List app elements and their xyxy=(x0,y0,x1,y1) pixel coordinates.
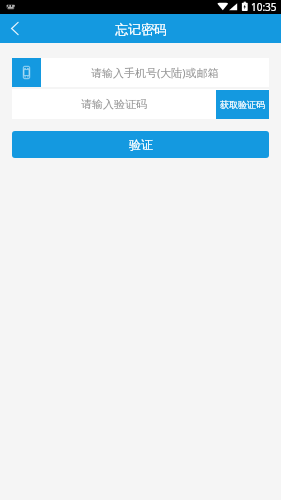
button[interactable]: Back xyxy=(0,14,31,43)
staticText: 10:35 xyxy=(251,0,277,14)
staticText: 请输入验证码 xyxy=(81,97,147,111)
staticText: 获取验证码 xyxy=(220,99,265,110)
button[interactable]: 获取验证码 xyxy=(216,90,269,119)
button[interactable]: 请输入验证码 xyxy=(12,89,269,119)
button[interactable]: 验证 xyxy=(12,131,269,158)
staticText: 忘记密码 xyxy=(115,21,167,37)
staticText: 验证 xyxy=(129,137,153,152)
staticText: 请输入手机号(大陆)或邮箱 xyxy=(91,65,219,80)
button[interactable]: 请输入手机号(大陆)或邮箱 xyxy=(12,58,269,87)
